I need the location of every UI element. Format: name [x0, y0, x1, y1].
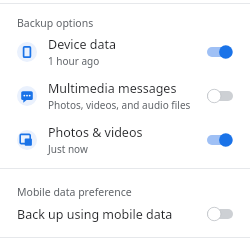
staticText: Back up using mobile data — [17, 206, 205, 223]
button[interactable]: Toggle mobile data backup — [205, 204, 235, 224]
staticText: Backup options — [17, 16, 94, 30]
button[interactable]: Photos & videos — [0, 118, 250, 162]
staticText: Photos, videos, and audio files — [48, 98, 191, 112]
staticText: Just now — [48, 142, 88, 156]
button[interactable]: Multimedia messages — [0, 74, 250, 118]
button[interactable]: Device data — [0, 30, 250, 74]
button[interactable]: Toggle device data backup — [205, 42, 235, 62]
button[interactable]: Toggle multimedia messages backup — [205, 86, 235, 106]
button[interactable]: Back up using mobile data — [0, 199, 250, 229]
staticText: Mobile data preference — [17, 185, 132, 199]
staticText: Photos & videos — [48, 124, 143, 141]
staticText: Multimedia messages — [48, 80, 177, 97]
button[interactable]: Toggle photos and videos backup — [205, 130, 235, 150]
staticText: Device data — [48, 36, 117, 53]
staticText: 1 hour ago — [48, 54, 100, 68]
